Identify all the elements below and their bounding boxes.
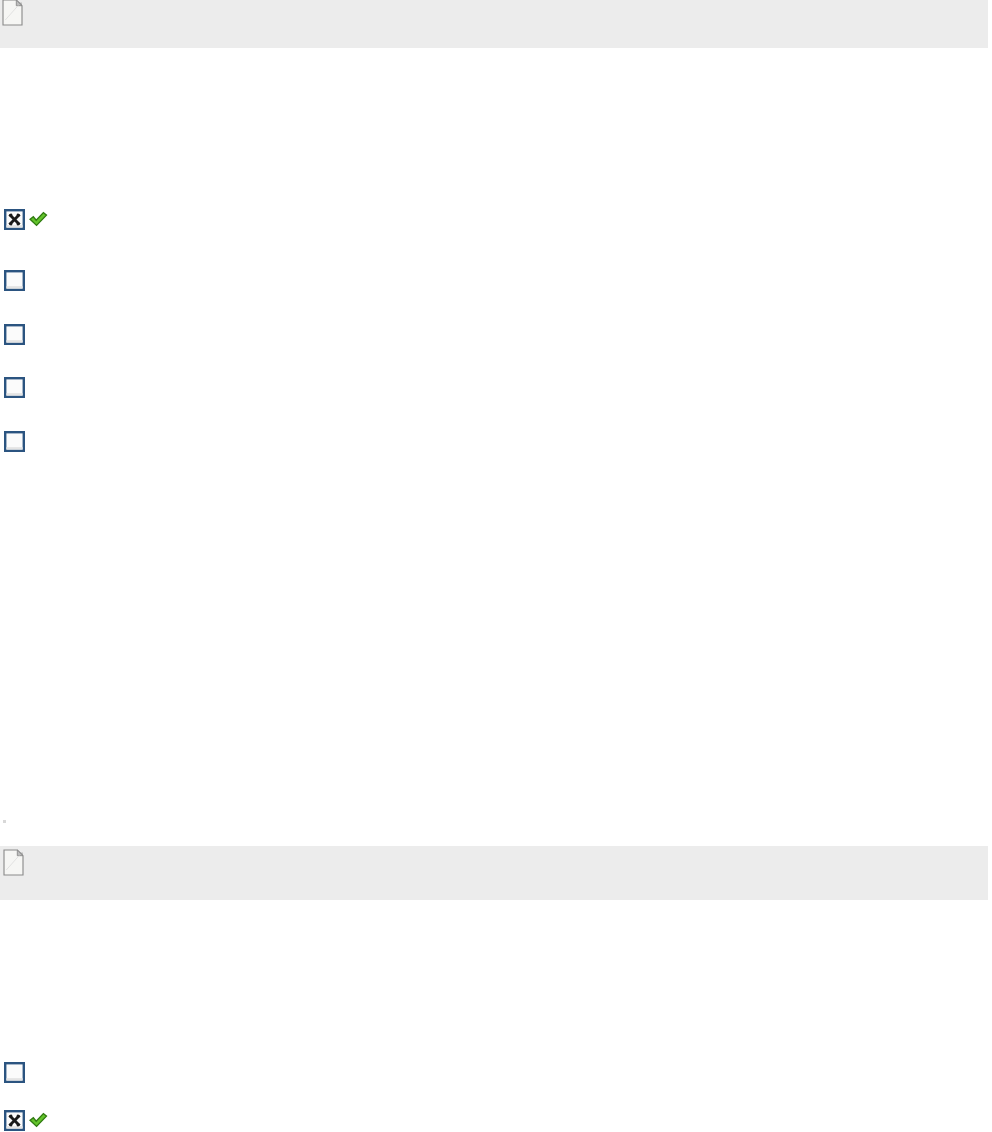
button[interactable]: Image placeholder [4,377,25,398]
button[interactable]: Image placeholder [4,324,25,345]
button[interactable]: Verified [29,211,47,227]
button[interactable]: Image placeholder [4,431,25,452]
button[interactable]: Image placeholder [4,1062,25,1083]
button[interactable]: Broken image [4,1110,25,1131]
button[interactable]: Broken image [4,209,25,230]
button[interactable]: Image placeholder [4,270,25,291]
button[interactable]: Document [4,850,23,875]
button[interactable]: Verified [29,1112,47,1128]
button[interactable]: Document [3,0,22,25]
